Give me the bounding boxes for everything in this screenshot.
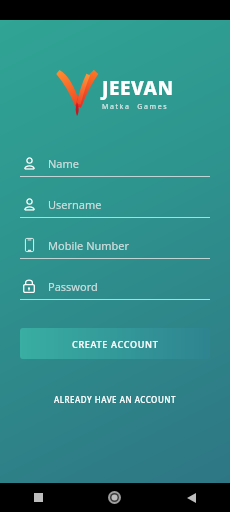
- button[interactable]: Home: [76, 483, 153, 512]
- staticText: Matka Games: [102, 102, 169, 112]
- button[interactable]: ALREADY HAVE AN ACCOUNT: [48, 388, 182, 411]
- staticText: CREATE ACCOUNT: [72, 338, 159, 350]
- button[interactable]: Recents: [0, 483, 76, 512]
- staticText: Name: [48, 156, 80, 171]
- staticText: JEEVAN: [102, 75, 174, 101]
- button[interactable]: Back: [153, 483, 230, 512]
- button[interactable]: CREATE ACCOUNT: [20, 328, 210, 359]
- staticText: Username: [48, 197, 102, 212]
- staticText: Password: [48, 279, 98, 294]
- staticText: Mobile Number: [48, 238, 130, 253]
- button[interactable]: Name: [20, 154, 210, 177]
- button[interactable]: Username: [20, 195, 210, 218]
- button[interactable]: Mobile Number: [20, 236, 210, 259]
- button[interactable]: Password: [20, 277, 210, 300]
